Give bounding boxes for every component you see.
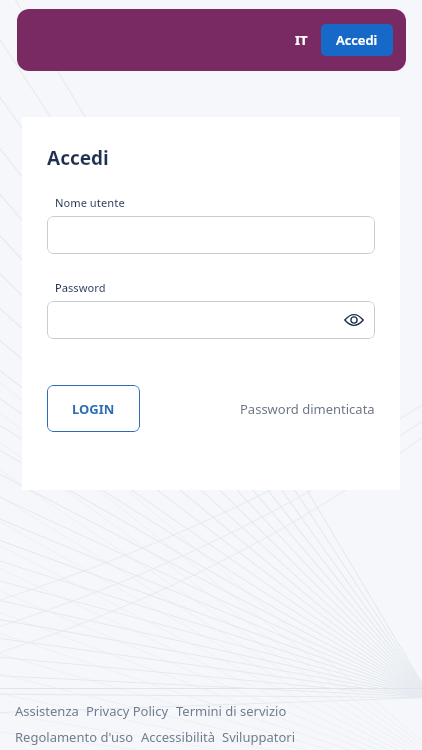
button[interactable]: Privacy Policy bbox=[86, 702, 169, 720]
button[interactable]: Accedi bbox=[321, 24, 393, 56]
button[interactable]: Regolamento d'uso bbox=[15, 728, 134, 746]
button[interactable]: Mostra password bbox=[47, 301, 375, 339]
staticText: IT bbox=[295, 31, 308, 49]
staticText: Password bbox=[55, 280, 106, 295]
staticText: Sviluppatori bbox=[222, 728, 296, 746]
staticText: Accedi bbox=[336, 31, 378, 49]
staticText: Accessibilità bbox=[141, 728, 215, 746]
staticText: Nome utente bbox=[55, 195, 125, 210]
button[interactable]: Termini di servizio bbox=[176, 702, 287, 720]
button[interactable]: Assistenza bbox=[15, 702, 79, 720]
staticText: Privacy Policy bbox=[86, 702, 169, 720]
button[interactable]: LOGIN bbox=[47, 385, 140, 432]
button[interactable]: Password dimenticata bbox=[240, 400, 400, 418]
staticText: Accedi bbox=[47, 145, 109, 171]
button[interactable] bbox=[47, 216, 375, 254]
button[interactable]: Sviluppatori bbox=[222, 728, 296, 746]
staticText: Termini di servizio bbox=[176, 702, 287, 720]
button[interactable]: Accessibilità bbox=[141, 728, 215, 746]
staticText: LOGIN bbox=[72, 400, 115, 418]
button[interactable]: IT bbox=[291, 27, 312, 53]
staticText: Regolamento d'uso bbox=[15, 728, 134, 746]
staticText: Assistenza bbox=[15, 702, 79, 720]
button[interactable]: Mostra password bbox=[341, 307, 367, 333]
staticText: Password dimenticata bbox=[240, 400, 375, 418]
